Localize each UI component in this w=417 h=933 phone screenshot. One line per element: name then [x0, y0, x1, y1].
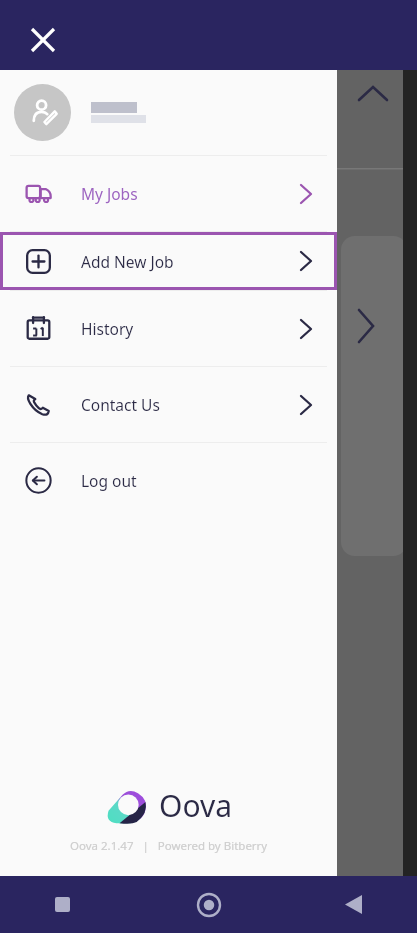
staticText: Oova 2.1.47 | Powered by Bitberry: [70, 838, 268, 854]
staticText: Contact Us: [81, 394, 160, 415]
staticText: Oova: [159, 785, 233, 826]
button[interactable]: Close: [20, 17, 66, 63]
staticText: Add New Job: [81, 251, 174, 272]
button[interactable]: [0, 70, 337, 155]
button[interactable]: History: [0, 291, 337, 366]
button[interactable]: Back: [278, 876, 417, 933]
staticText: My Jobs: [81, 183, 138, 204]
button[interactable]: Log out: [0, 443, 337, 518]
button[interactable]: Add New Job: [0, 232, 337, 290]
button[interactable]: Recent apps: [0, 876, 139, 933]
button[interactable]: Contact Us: [0, 367, 337, 442]
staticText: History: [81, 318, 134, 339]
button[interactable]: Home: [139, 876, 278, 933]
button[interactable]: My Jobs: [0, 156, 337, 231]
staticText: Log out: [81, 470, 137, 491]
